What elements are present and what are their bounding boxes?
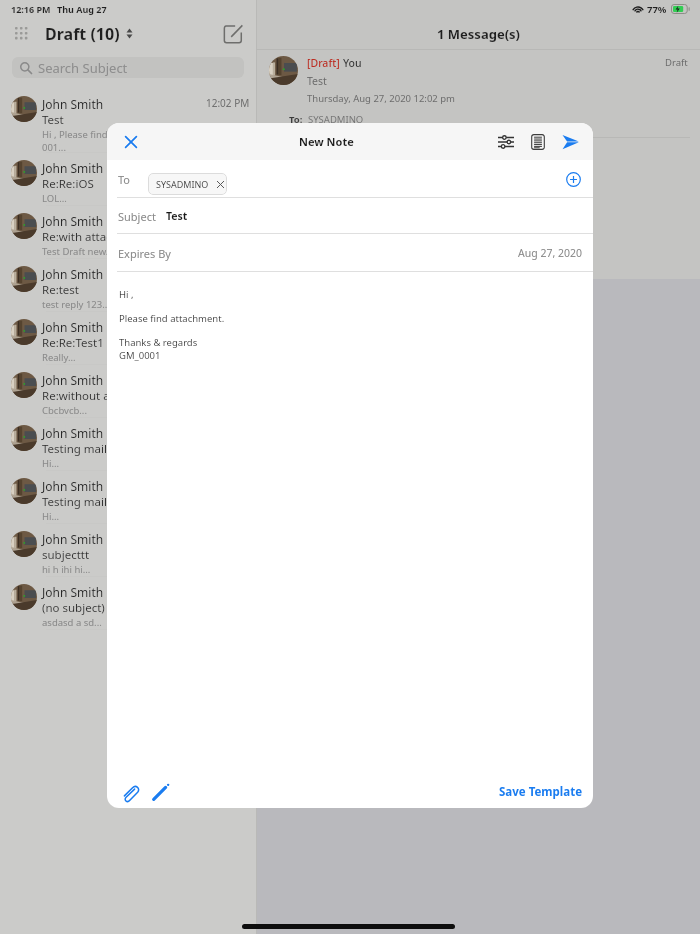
staticText: John Smith: [42, 584, 104, 600]
staticText: John Smith: [42, 160, 104, 176]
staticText: John Smith: [42, 319, 104, 335]
staticText: hi h ihi hi...: [42, 563, 91, 576]
staticText: Hi ,: [119, 288, 134, 301]
button[interactable]: John Smith: [0, 365, 256, 418]
button[interactable]: Draw: [146, 778, 174, 806]
button[interactable]: Close: [118, 129, 144, 155]
staticText: Thursday, Aug 27, 2020 12:02 pm: [307, 92, 455, 105]
button[interactable]: John Smith: [0, 89, 256, 153]
staticText: Thu Aug 27: [57, 3, 107, 15]
staticText: Re:Re:iOS: [42, 176, 94, 192]
staticText: [Draft]: [307, 56, 343, 70]
other: Apps: [15, 27, 29, 40]
button[interactable]: Compose: [221, 22, 245, 46]
button[interactable]: SYSADMINO: [148, 173, 227, 195]
staticText: John Smith: [42, 478, 104, 494]
staticText: Please find attachment.: [119, 312, 225, 325]
staticText: Hi...: [42, 457, 60, 470]
staticText: To: [118, 172, 131, 187]
staticText: You: [343, 56, 362, 70]
staticText: Really...: [42, 351, 76, 364]
button[interactable]: Expires By: [107, 234, 593, 272]
staticText: Testing mail: [42, 494, 108, 510]
button[interactable]: John Smith: [0, 524, 256, 577]
button[interactable]: John Smith: [0, 153, 256, 206]
staticText: 001...: [42, 141, 66, 153]
button[interactable]: Subject: [107, 198, 593, 234]
staticText: Save Template: [499, 784, 582, 800]
staticText: subjecttt: [42, 547, 90, 563]
staticText: GM_0001: [119, 349, 161, 362]
staticText: SYSADMINO: [156, 178, 209, 190]
staticText: 1 Message(s): [437, 25, 520, 43]
staticText: LOL...: [42, 192, 67, 205]
staticText: John Smith: [42, 213, 104, 229]
staticText: Search Subject: [38, 59, 128, 77]
button[interactable]: To: [107, 160, 593, 198]
button[interactable]: John Smith: [0, 312, 256, 365]
staticText: Thanks & regards: [119, 336, 198, 349]
staticText: asdasd a sd...: [42, 616, 102, 629]
staticText: Cbcbvcb...: [42, 404, 87, 417]
button[interactable]: Options: [493, 129, 519, 155]
button[interactable]: Save Template: [496, 779, 585, 805]
staticText: John Smith: [42, 266, 104, 282]
button[interactable]: John Smith: [0, 259, 256, 312]
staticText: John Smith: [42, 96, 104, 112]
staticText: (no subject): [42, 600, 105, 616]
button[interactable]: Template: [525, 129, 551, 155]
staticText: test reply 123...: [42, 298, 110, 311]
staticText: Re:Re:Test1: [42, 335, 104, 351]
staticText: To:: [289, 113, 303, 126]
button[interactable]: John Smith: [0, 206, 256, 259]
staticText: Testing mail: [42, 441, 108, 457]
staticText: Test: [42, 112, 64, 128]
staticText: Re:without att: [42, 388, 118, 404]
staticText: 12:16 PM: [11, 3, 51, 15]
staticText: New Note: [299, 134, 354, 149]
staticText: Draft: [665, 56, 688, 69]
staticText: 77%: [647, 3, 667, 16]
staticText: Hi , Please find a: [42, 128, 116, 141]
staticText: John Smith: [42, 531, 104, 547]
staticText: Re:test: [42, 282, 80, 298]
button[interactable]: Search Subject: [12, 57, 244, 78]
staticText: John Smith: [42, 372, 104, 388]
staticText: Draft (10): [45, 23, 120, 45]
staticText: John Smith: [42, 425, 104, 441]
button[interactable]: Add recipient: [561, 167, 585, 191]
staticText: Expires By: [118, 246, 171, 261]
staticText: Test: [307, 74, 327, 88]
button[interactable]: Attach file: [115, 778, 143, 806]
button[interactable]: John Smith: [0, 577, 256, 630]
staticText: Test Draft new...: [42, 245, 114, 258]
button[interactable]: John Smith: [0, 471, 256, 524]
staticText: Subject: [118, 209, 156, 224]
staticText: SYSADMINO: [308, 113, 364, 126]
button[interactable]: John Smith: [0, 418, 256, 471]
staticText: Test: [166, 209, 188, 223]
staticText: Hi...: [42, 510, 60, 523]
staticText: Re:with attach: [42, 229, 119, 245]
staticText: 12:02 PM: [206, 96, 250, 110]
staticText: Aug 27, 2020: [518, 246, 582, 260]
button[interactable]: Send: [557, 129, 583, 155]
